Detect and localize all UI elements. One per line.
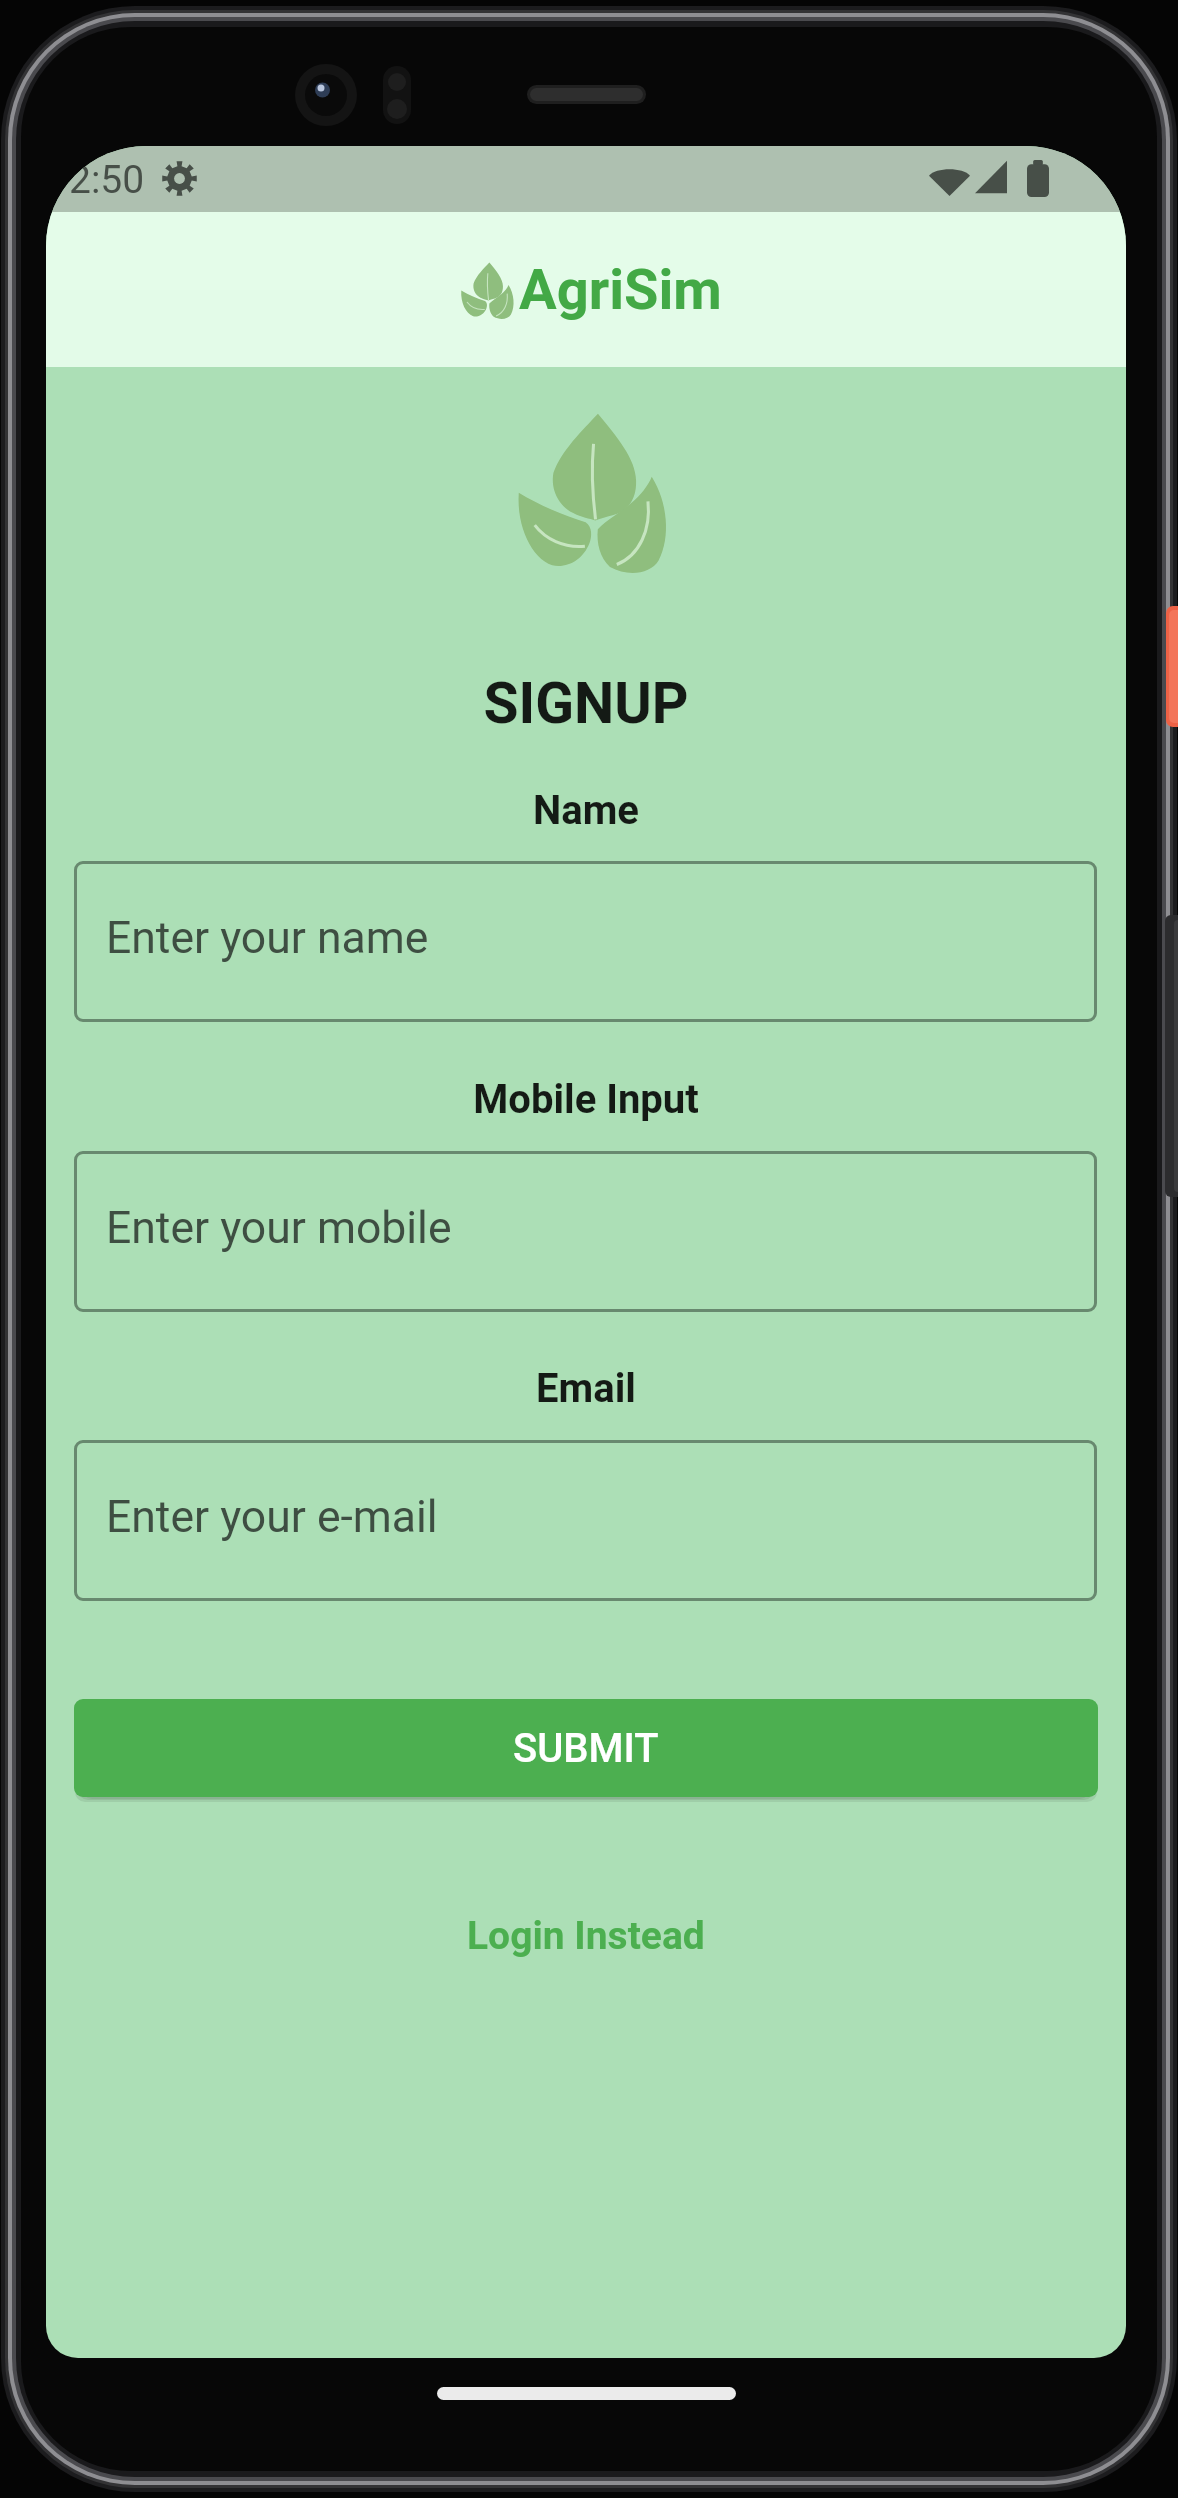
button[interactable]: Enter your e-mail <box>74 1440 1097 1601</box>
button[interactable]: SUBMIT <box>74 1699 1098 1797</box>
staticText: Enter your mobile <box>106 1202 452 1254</box>
staticText: Name <box>46 787 1126 834</box>
button[interactable]: Enter your name <box>74 861 1097 1022</box>
staticText: SUBMIT <box>513 1725 659 1772</box>
button[interactable]: Enter your mobile <box>74 1151 1097 1312</box>
staticText: Enter your e-mail <box>106 1491 438 1543</box>
button[interactable]: Login Instead <box>433 1894 739 1978</box>
staticText: AgriSim <box>519 257 722 323</box>
staticText: SIGNUP <box>46 670 1126 737</box>
staticText: Login Instead <box>467 1913 705 1959</box>
staticText: Email <box>46 1365 1126 1412</box>
staticText: Enter your name <box>106 912 429 964</box>
staticText: 2:50 <box>69 157 145 203</box>
staticText: Mobile Input <box>46 1076 1126 1123</box>
